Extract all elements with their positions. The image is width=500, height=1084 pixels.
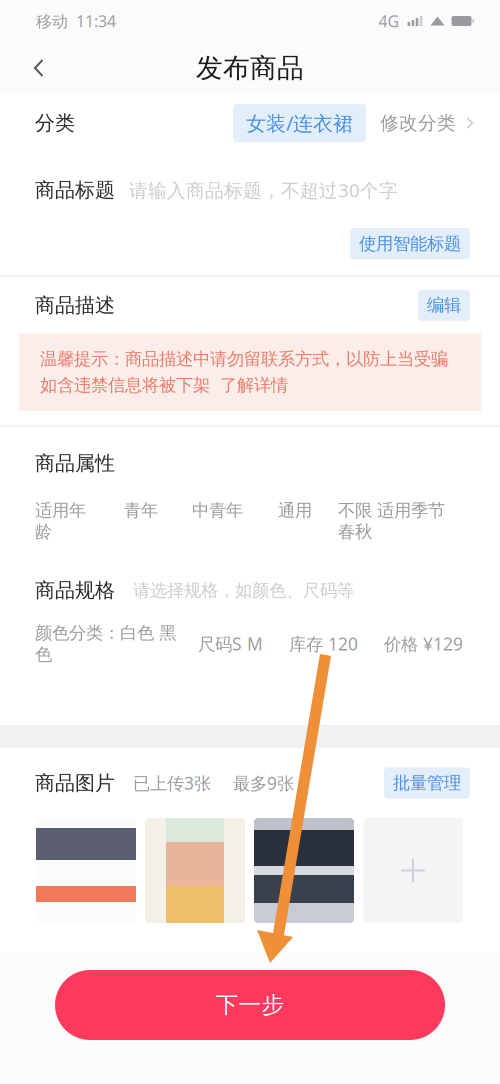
staticText: 修改分类 <box>380 111 456 134</box>
staticText: 女装/连衣裙 <box>246 110 353 136</box>
staticText: 温馨提示：商品描述中请勿留联系方式，以防上当受骗 <box>40 348 448 370</box>
staticText: 最多9张 <box>233 771 294 794</box>
staticText: 发布商品 <box>196 52 304 84</box>
button[interactable]: 编辑 <box>418 290 470 321</box>
staticText: 请输入商品标题，不超过30个字 <box>129 178 398 202</box>
staticText: 价格 ¥129 <box>384 632 463 655</box>
staticText: 通用 <box>278 500 312 521</box>
staticText: 批量管理 <box>393 772 461 794</box>
staticText: 青年 <box>124 500 158 521</box>
staticText: 商品规格 <box>35 578 115 603</box>
staticText: 不限 适用季节 春秋 <box>338 500 445 542</box>
staticText: 分类 <box>35 111 75 135</box>
staticText: 4G <box>378 10 399 32</box>
button[interactable]: Add photo <box>363 818 463 923</box>
button[interactable]: 下一步 <box>55 970 445 1040</box>
button[interactable]: 使用智能标题 <box>350 228 470 259</box>
button[interactable]: Back <box>16 45 62 91</box>
staticText: 商品描述 <box>35 293 115 318</box>
staticText: 中青年 <box>192 500 243 521</box>
button[interactable]: 分类 <box>0 94 500 152</box>
staticText: 移动 11:34 <box>36 10 116 32</box>
staticText: 库存 120 <box>289 632 358 655</box>
staticText: 尺码S M <box>198 632 263 655</box>
staticText: 已上传3张 <box>133 771 211 794</box>
staticText: 请选择规格，如颜色、尺码等 <box>133 580 354 601</box>
staticText: 颜色分类：白色 黑色 <box>35 622 176 665</box>
staticText: 商品属性 <box>35 451 115 476</box>
staticText: 使用智能标题 <box>359 233 461 254</box>
staticText: 商品图片 <box>35 771 115 795</box>
staticText: 商品标题 <box>35 178 115 202</box>
staticText: 下一步 <box>215 991 284 1019</box>
staticText: 适用年龄 <box>35 500 86 542</box>
staticText: 如含违禁信息将被下架 了解详情 <box>40 375 288 396</box>
button[interactable]: 批量管理 <box>384 767 470 799</box>
staticText: 编辑 <box>427 295 461 316</box>
